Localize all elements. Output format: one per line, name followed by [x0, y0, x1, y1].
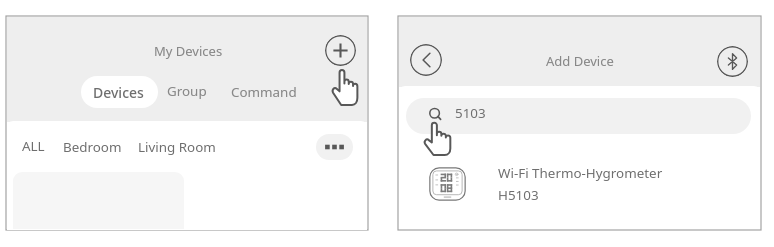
- staticText: Bedroom: [63, 138, 122, 156]
- staticText: H5103: [498, 186, 539, 204]
- button[interactable]: [81, 76, 158, 108]
- button[interactable]: More options: [316, 134, 353, 160]
- button[interactable]: [226, 76, 302, 108]
- staticText: Wi-Fi Thermo-Hygrometer: [498, 164, 663, 182]
- button[interactable]: [404, 156, 754, 224]
- button[interactable]: [15, 134, 51, 159]
- staticText: Add Device: [546, 52, 614, 70]
- staticText: Devices: [93, 83, 144, 102]
- staticText: My Devices: [154, 42, 223, 60]
- button[interactable]: [162, 76, 214, 108]
- staticText: ALL: [22, 137, 45, 155]
- button[interactable]: [57, 134, 125, 159]
- button[interactable]: Add device: [325, 35, 356, 66]
- button[interactable]: [406, 98, 751, 134]
- staticText: Command: [231, 83, 297, 101]
- staticText: 5103: [455, 104, 486, 122]
- button[interactable]: Back: [410, 44, 442, 76]
- button[interactable]: [131, 134, 221, 159]
- staticText: Group: [167, 82, 207, 100]
- staticText: Living Room: [138, 138, 216, 156]
- button[interactable]: Bluetooth: [717, 46, 748, 77]
